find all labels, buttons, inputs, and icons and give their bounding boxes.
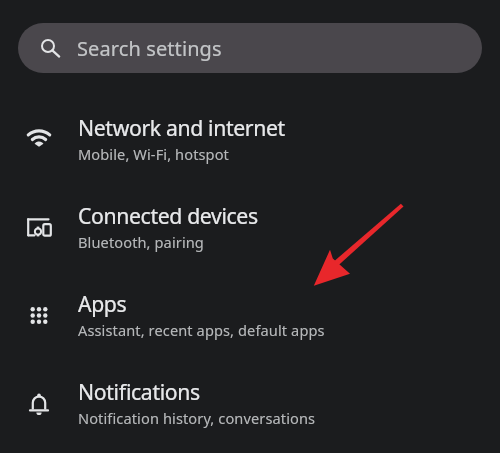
button[interactable]: Search settings xyxy=(18,23,482,73)
button[interactable]: Connected devices xyxy=(0,185,500,273)
staticText: Assistant, recent apps, default apps xyxy=(78,320,325,340)
staticText: Connected devices xyxy=(78,201,258,230)
button[interactable]: Network and internet xyxy=(0,97,500,185)
staticText: Notifications xyxy=(78,377,200,406)
staticText: Notification history, conversations xyxy=(78,408,316,428)
staticText: Apps xyxy=(78,289,127,318)
button[interactable]: Notifications xyxy=(0,361,500,449)
button[interactable]: Apps xyxy=(0,273,500,361)
staticText: Mobile, Wi-Fi, hotspot xyxy=(78,144,229,164)
staticText: Network and internet xyxy=(78,113,285,142)
staticText: Bluetooth, pairing xyxy=(78,232,204,252)
staticText: Search settings xyxy=(77,35,222,62)
